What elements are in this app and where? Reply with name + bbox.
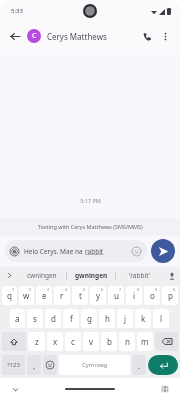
button[interactable]: Send [151, 239, 175, 263]
staticText: C [32, 31, 37, 41]
button[interactable]: Expand suggestions [0, 267, 18, 284]
staticText: gwningen [75, 271, 108, 280]
staticText: k [141, 313, 146, 324]
staticText: 1 [12, 287, 15, 292]
staticText: i [133, 290, 136, 301]
button[interactable]: f [63, 309, 79, 328]
button[interactable]: Call [138, 27, 156, 45]
button[interactable]: u [108, 286, 124, 305]
button[interactable]: c [65, 332, 81, 351]
staticText: 9 [155, 287, 158, 292]
button[interactable]: cwningen [18, 267, 66, 284]
staticText: v [89, 336, 94, 347]
button[interactable]: y [90, 286, 106, 305]
button[interactable]: , [27, 355, 41, 375]
staticText: . [138, 360, 141, 371]
staticText: ?123 [7, 361, 20, 369]
button[interactable]: v [83, 332, 99, 351]
button[interactable]: p [162, 286, 178, 305]
button[interactable]: Helo Cerys. Mae na [5, 240, 147, 262]
button[interactable]: Backspace [155, 332, 178, 351]
button[interactable]: s [27, 309, 43, 328]
staticText: 5:33 [11, 7, 23, 15]
button[interactable]: r [54, 286, 70, 305]
button[interactable]: a [10, 309, 25, 328]
button[interactable]: Hide keyboard [8, 382, 22, 396]
staticText: Helo Cerys. Mae na [24, 247, 85, 256]
button[interactable]: t [72, 286, 88, 305]
button[interactable]: i [126, 286, 142, 305]
staticText: j [124, 313, 127, 324]
staticText: o [150, 290, 155, 301]
staticText: p [168, 290, 173, 301]
staticText: 8 [137, 287, 140, 292]
button[interactable]: w [19, 286, 34, 305]
button[interactable]: ?123 [2, 355, 25, 375]
staticText: r [60, 290, 64, 301]
staticText: 2 [29, 287, 32, 292]
staticText: m [141, 336, 149, 347]
staticText: n [125, 336, 130, 347]
button[interactable]: d [45, 309, 61, 328]
staticText: 0 [173, 287, 176, 292]
staticText: g [87, 313, 92, 324]
staticText: t [79, 290, 82, 301]
staticText: c [71, 336, 75, 347]
staticText: s [33, 313, 37, 324]
staticText: d [51, 313, 56, 324]
staticText: f [70, 313, 73, 324]
button[interactable]: Emoji keyboard [43, 355, 57, 375]
staticText: 'rabbit' [129, 271, 151, 280]
staticText: l [160, 313, 163, 324]
staticText: Texting with Cerys Matthews (SMS/MMS) [38, 223, 143, 230]
staticText: a [15, 313, 20, 324]
button[interactable]: Voice input [164, 267, 180, 284]
button[interactable]: n [119, 332, 135, 351]
button[interactable]: Shift [2, 332, 26, 351]
button[interactable]: x [47, 332, 63, 351]
staticText: cwningen [27, 271, 57, 280]
staticText: e [42, 290, 47, 301]
staticText: x [53, 336, 58, 347]
staticText: 5:17 PM [80, 197, 101, 204]
button[interactable]: z [28, 332, 45, 351]
button[interactable]: Back [6, 27, 24, 45]
staticText: 6 [101, 287, 104, 292]
button[interactable]: 'rabbit' [116, 267, 164, 284]
button[interactable]: g [81, 309, 97, 328]
staticText: 3 [47, 287, 50, 292]
button[interactable]: . [132, 355, 146, 375]
staticText: y [96, 290, 101, 301]
button[interactable]: m [137, 332, 153, 351]
staticText: z [35, 336, 39, 347]
button[interactable]: k [135, 309, 151, 328]
button[interactable]: Home [65, 388, 115, 390]
button[interactable]: o [144, 286, 160, 305]
button[interactable]: q [2, 286, 17, 305]
staticText: u [114, 290, 119, 301]
button[interactable]: gwningen [67, 267, 115, 284]
staticText: b [107, 336, 112, 347]
button[interactable]: l [153, 309, 169, 328]
staticText: rabbit [85, 247, 104, 256]
staticText: h [105, 313, 110, 324]
button[interactable]: Cymraeg [59, 355, 130, 375]
button[interactable]: Enter [148, 355, 178, 375]
staticText: q [7, 290, 12, 301]
button[interactable]: e [36, 286, 52, 305]
button[interactable]: Emoji [130, 245, 142, 257]
staticText: Cerys Matthews [47, 31, 107, 42]
staticText: , [33, 360, 36, 371]
staticText: 7 [119, 287, 122, 292]
button[interactable]: Change keyboard language [158, 382, 172, 396]
staticText: w [23, 290, 30, 301]
staticText: 5 [83, 287, 86, 292]
staticText: Cymraeg [82, 361, 108, 369]
staticText: 4 [65, 287, 68, 292]
button[interactable]: C [27, 29, 138, 43]
button[interactable]: j [117, 309, 133, 328]
button[interactable]: h [99, 309, 115, 328]
button[interactable]: b [101, 332, 117, 351]
button[interactable]: More options [156, 27, 174, 45]
